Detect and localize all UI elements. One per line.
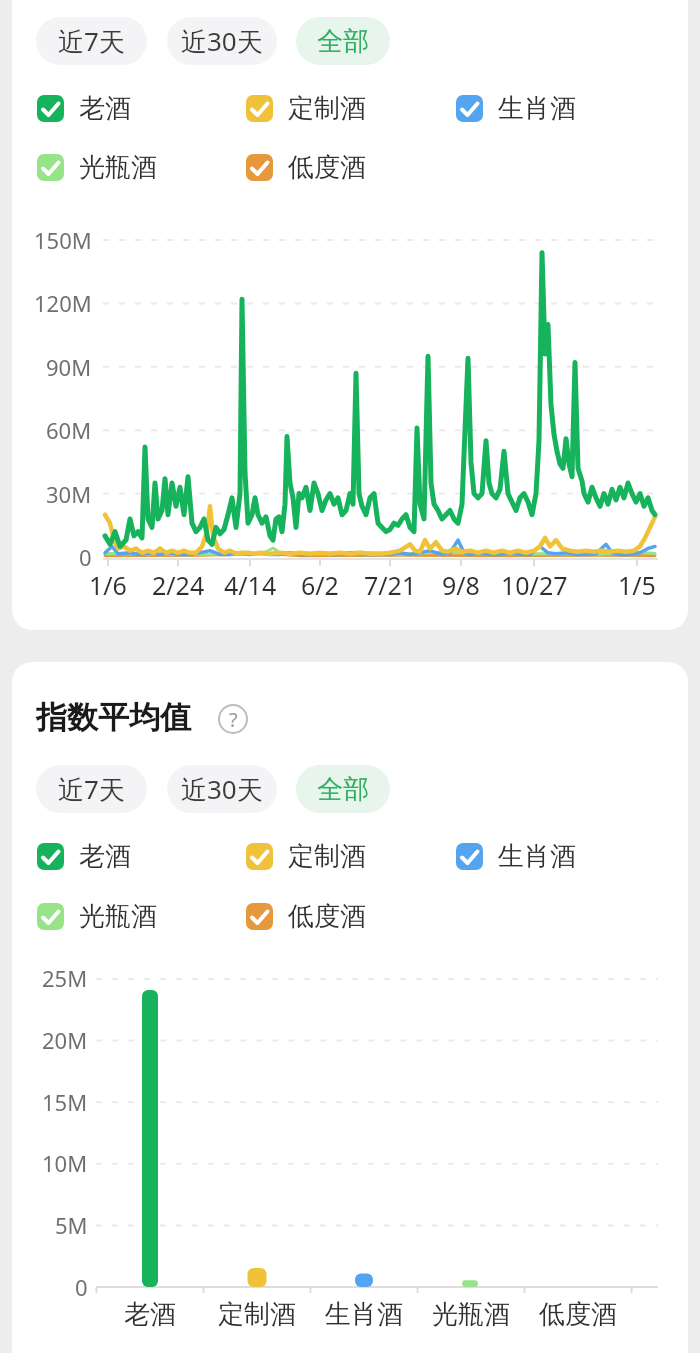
staticText: 光瓶酒 <box>432 1298 510 1328</box>
staticText: 120M <box>34 288 92 318</box>
staticText: 4/14 <box>224 568 277 598</box>
staticText: 30M <box>46 479 92 509</box>
staticText: 低度酒 <box>539 1298 617 1328</box>
staticText: 近7天 <box>58 771 125 807</box>
staticText: 9/8 <box>442 568 480 598</box>
staticText: 老酒 <box>79 840 131 873</box>
staticText: 25M <box>42 963 88 993</box>
staticText: 指数平均值 <box>36 698 191 737</box>
button[interactable]: 近7天 <box>36 765 147 813</box>
staticText: 6/2 <box>301 568 339 598</box>
staticText: 近7天 <box>58 23 125 59</box>
staticText: 60M <box>46 415 92 445</box>
staticText: 2/24 <box>152 568 205 598</box>
staticText: 0 <box>79 542 92 572</box>
staticText: 90M <box>46 352 92 382</box>
staticText: 5M <box>55 1210 88 1240</box>
staticText: 老酒 <box>124 1298 176 1328</box>
staticText: 1/6 <box>89 568 127 598</box>
staticText: 老酒 <box>79 92 131 125</box>
button[interactable]: 近30天 <box>167 17 277 65</box>
staticText: 近30天 <box>181 771 263 807</box>
button[interactable]: 全部 <box>296 765 390 813</box>
button[interactable]: ? <box>218 704 248 734</box>
button[interactable]: 近30天 <box>167 765 277 813</box>
button[interactable]: 老酒 <box>37 92 131 125</box>
button[interactable]: 全部 <box>296 17 390 65</box>
staticText: 10/27 <box>501 568 568 598</box>
staticText: 150M <box>34 225 92 255</box>
staticText: 1/5 <box>618 568 656 598</box>
staticText: 定制酒 <box>218 1298 296 1328</box>
staticText: 低度酒 <box>288 900 366 933</box>
button[interactable]: 老酒 <box>37 840 131 873</box>
staticText: 生肖酒 <box>498 840 576 873</box>
staticText: 全部 <box>317 25 369 58</box>
button[interactable]: 生肖酒 <box>456 840 576 873</box>
staticText: 20M <box>42 1025 88 1055</box>
button[interactable]: 光瓶酒 <box>37 151 157 184</box>
staticText: 光瓶酒 <box>79 151 157 184</box>
button[interactable]: 近7天 <box>36 17 147 65</box>
button[interactable]: 低度酒 <box>246 151 366 184</box>
staticText: 生肖酒 <box>498 92 576 125</box>
staticText: 7/21 <box>364 568 417 598</box>
staticText: 光瓶酒 <box>79 900 157 933</box>
button[interactable]: 光瓶酒 <box>37 900 157 933</box>
staticText: 全部 <box>317 773 369 806</box>
staticText: 生肖酒 <box>325 1298 403 1328</box>
staticText: 15M <box>42 1087 88 1117</box>
staticText: ? <box>229 706 238 733</box>
button[interactable]: 生肖酒 <box>456 92 576 125</box>
staticText: 近30天 <box>181 23 263 59</box>
staticText: 定制酒 <box>288 840 366 873</box>
staticText: 0 <box>75 1272 88 1302</box>
staticText: 低度酒 <box>288 151 366 184</box>
staticText: 10M <box>42 1148 88 1178</box>
button[interactable]: 定制酒 <box>246 840 366 873</box>
button[interactable]: 定制酒 <box>246 92 366 125</box>
staticText: 定制酒 <box>288 92 366 125</box>
button[interactable]: 低度酒 <box>246 900 366 933</box>
